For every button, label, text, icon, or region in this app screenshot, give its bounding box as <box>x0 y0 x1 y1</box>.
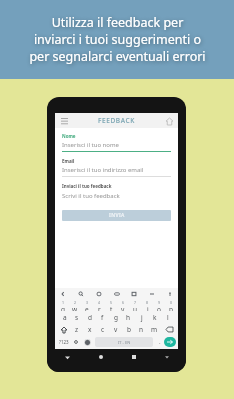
button[interactable]: v <box>109 324 122 335</box>
button[interactable]: 5 <box>105 300 117 311</box>
staticText: v <box>114 325 118 334</box>
staticText: u <box>133 305 138 311</box>
staticText: d <box>88 313 92 322</box>
staticText: p <box>169 305 173 311</box>
staticText: Inviaci il tuo feedback <box>62 183 112 189</box>
staticText: o <box>157 305 161 311</box>
button[interactable]: x <box>83 324 96 335</box>
staticText: k <box>153 313 157 322</box>
button[interactable]: Home <box>95 351 107 363</box>
button[interactable]: s <box>71 312 83 323</box>
staticText: l <box>167 313 169 322</box>
button[interactable]: Back <box>61 351 73 363</box>
button[interactable]: . <box>155 337 164 347</box>
button[interactable]: d <box>83 312 96 323</box>
button[interactable]: Language <box>81 337 93 347</box>
staticText: IT - EN <box>118 340 131 345</box>
staticText: 8 <box>146 300 149 305</box>
staticText: n <box>139 325 144 334</box>
button[interactable]: Scrivi il tuo feedback <box>62 192 171 204</box>
button[interactable]: Menu <box>59 116 69 126</box>
staticText: 5 <box>110 300 113 305</box>
button[interactable]: Voice <box>165 289 175 299</box>
staticText: w <box>72 305 78 311</box>
button[interactable]: l <box>161 312 174 323</box>
button[interactable]: Space <box>95 337 153 347</box>
button[interactable]: k <box>148 312 161 323</box>
button[interactable]: Inserisci il tuo nome <box>62 141 171 149</box>
staticText: 1 <box>62 300 65 305</box>
staticText: 4 <box>98 300 101 305</box>
staticText: e <box>85 305 89 311</box>
staticText: h <box>126 313 131 322</box>
staticText: f <box>101 313 104 322</box>
staticText: q <box>61 305 65 311</box>
button[interactable]: Hide keyboard <box>162 352 172 362</box>
staticText: m <box>151 325 158 334</box>
staticText: 3 <box>86 300 89 305</box>
button[interactable]: Shift <box>56 324 71 335</box>
staticText: Utilizza il feedback per inviarci i tuoi… <box>29 14 206 65</box>
button[interactable]: z <box>71 324 83 335</box>
staticText: 6 <box>122 300 125 305</box>
button[interactable]: f <box>96 312 109 323</box>
staticText: 9 <box>158 300 161 305</box>
button[interactable]: 8 <box>141 300 153 311</box>
button[interactable]: INVIA <box>62 210 171 221</box>
staticText: Scrivi il tuo feedback <box>62 192 120 200</box>
staticText: Inserisci il tuo indirizzo email <box>62 166 144 174</box>
button[interactable]: 7 <box>129 300 141 311</box>
button[interactable]: Emoji <box>94 289 104 299</box>
staticText: ?123 <box>59 339 69 345</box>
button[interactable]: Back <box>58 289 68 299</box>
staticText: Email <box>62 158 75 164</box>
staticText: x <box>88 325 92 334</box>
staticText: . <box>159 338 161 346</box>
staticText: 2 <box>74 300 77 305</box>
button[interactable]: Recents <box>128 351 140 363</box>
button[interactable]: 0 <box>165 300 177 311</box>
button[interactable]: n <box>135 324 148 335</box>
staticText: g <box>114 313 118 322</box>
button[interactable]: Inserisci il tuo indirizzo email <box>62 166 171 174</box>
button[interactable]: Translate <box>129 289 139 299</box>
staticText: r <box>98 305 101 311</box>
button[interactable]: a <box>59 312 71 323</box>
button[interactable]: h <box>122 312 135 323</box>
staticText: Inserisci il tuo nome <box>62 141 119 149</box>
button[interactable]: 1 <box>56 300 69 311</box>
staticText: z <box>75 325 79 334</box>
staticText: FEEDBACK <box>98 116 135 125</box>
staticText: a <box>63 313 67 322</box>
staticText: b <box>127 325 131 334</box>
staticText: i <box>147 305 149 311</box>
staticText: c <box>101 325 105 334</box>
button[interactable]: Search <box>76 289 86 299</box>
button[interactable]: 4 <box>93 300 105 311</box>
button[interactable]: More <box>147 289 157 299</box>
button[interactable]: Backspace <box>161 324 177 335</box>
button[interactable]: j <box>135 312 148 323</box>
button[interactable]: GIF <box>112 289 122 299</box>
button[interactable]: m <box>148 324 161 335</box>
staticText: Nome <box>62 133 76 139</box>
staticText: y <box>121 305 125 311</box>
button[interactable]: c <box>96 324 109 335</box>
button[interactable]: Enter <box>164 337 176 347</box>
staticText: 0 <box>170 300 173 305</box>
button[interactable]: ?123 <box>57 337 71 347</box>
button[interactable]: g <box>109 312 122 323</box>
button[interactable]: b <box>122 324 135 335</box>
button[interactable]: 3 <box>81 300 93 311</box>
button[interactable]: 2 <box>69 300 81 311</box>
staticText: t <box>110 305 113 311</box>
staticText: s <box>75 313 79 322</box>
button[interactable]: 6 <box>117 300 129 311</box>
staticText: j <box>141 313 143 322</box>
button[interactable]: Home <box>164 116 174 126</box>
button[interactable]: Emoji <box>71 337 81 347</box>
staticText: 7 <box>134 300 137 305</box>
staticText: INVIA <box>109 212 125 219</box>
button[interactable]: 9 <box>153 300 165 311</box>
